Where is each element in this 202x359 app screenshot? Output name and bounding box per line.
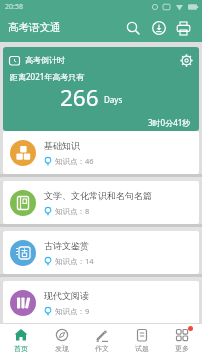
button[interactable] (120, 15, 146, 41)
staticText: 现代文阅读 (44, 290, 89, 301)
button[interactable]: 高考倒计时 (3, 47, 199, 131)
staticText: 高考倒计时 (25, 55, 65, 65)
button[interactable]: 基础知识 (3, 131, 199, 174)
staticText: 知识点：14 (55, 256, 94, 266)
staticText: 高考语文通 (8, 21, 61, 34)
button[interactable]: 更多 (162, 324, 202, 359)
button[interactable] (177, 51, 195, 69)
staticText: 20:58 (5, 2, 23, 12)
staticText: 文学、文化常识和名句名篇 (44, 190, 152, 201)
staticText: 更多 (175, 344, 189, 353)
staticText: 3时0分41秒 (148, 117, 191, 128)
staticText: Days (104, 94, 123, 105)
staticText: 知识点：9 (55, 306, 90, 316)
staticText: 首页 (14, 344, 28, 353)
button[interactable] (172, 15, 194, 41)
staticText: 古诗文鉴赏 (44, 240, 89, 251)
staticText: 作文 (95, 344, 109, 353)
button[interactable]: 古诗文鉴赏 (3, 231, 199, 274)
staticText: 发现 (55, 344, 69, 353)
button[interactable]: 现代文阅读 (3, 281, 199, 324)
button[interactable]: 首页 (0, 324, 41, 359)
staticText: 知识点：8 (55, 206, 90, 216)
button[interactable]: 文学、文化常识和名句名篇 (3, 181, 199, 224)
staticText: 试题 (135, 344, 149, 353)
button[interactable] (146, 15, 172, 41)
button[interactable]: 试题 (122, 324, 162, 359)
button[interactable]: 作文 (82, 324, 122, 359)
button[interactable]: 发现 (41, 324, 82, 359)
staticText: 距离2021年高考只有 (10, 71, 85, 82)
staticText: 基础知识 (44, 140, 80, 151)
staticText: 266 (60, 82, 99, 110)
staticText: 知识点：46 (55, 156, 94, 166)
